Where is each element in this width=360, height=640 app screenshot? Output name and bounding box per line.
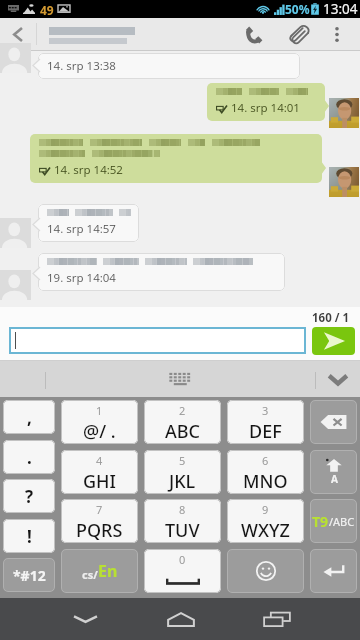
staticText: ABC — [165, 419, 200, 444]
button[interactable]: 4 — [61, 450, 138, 494]
staticText: cs/ — [82, 567, 98, 582]
staticText: 1 — [96, 403, 103, 418]
button[interactable]: 14. srp 14:01 — [207, 83, 325, 121]
button[interactable]: Question mark — [3, 479, 55, 513]
button[interactable]: Enter — [310, 549, 357, 593]
staticText: 14. srp 14:57 — [47, 221, 116, 237]
button[interactable]: 6 — [227, 450, 304, 494]
staticText: WXYZ — [241, 518, 290, 543]
button[interactable]: 14. srp 14:52 — [30, 134, 322, 183]
button[interactable]: Hide keyboard — [316, 361, 360, 397]
staticText: , — [27, 406, 32, 429]
button[interactable]: Emoji — [227, 549, 304, 593]
staticText: 8 — [179, 502, 186, 517]
button[interactable]: 7 — [61, 499, 138, 543]
button[interactable]: Back — [25, 598, 145, 640]
staticText: 7 — [96, 502, 103, 517]
button[interactable]: Call — [238, 18, 270, 51]
staticText: 5 — [179, 453, 186, 468]
button[interactable]: More options — [324, 18, 350, 51]
button[interactable] — [9, 327, 306, 354]
button[interactable]: Backspace — [310, 400, 357, 444]
staticText: 0 — [179, 552, 186, 567]
button[interactable]: Exclamation mark — [3, 519, 55, 553]
button[interactable]: 1 — [61, 400, 138, 444]
staticText: PQRS — [76, 518, 123, 543]
staticText: 14. srp 14:01 — [231, 100, 300, 116]
button[interactable]: Send — [312, 327, 355, 355]
button[interactable]: 3 — [227, 400, 304, 444]
staticText: 50% — [285, 1, 310, 17]
button[interactable]: Attach — [282, 18, 314, 51]
staticText: MNO — [243, 469, 288, 494]
staticText: T9 — [312, 512, 329, 531]
staticText: GHI — [83, 469, 116, 494]
button[interactable]: 14. srp 13:38 — [38, 53, 300, 79]
staticText: @/ . — [83, 419, 116, 444]
staticText: 14. srp 14:52 — [54, 162, 123, 178]
staticText: 14. srp 13:38 — [47, 58, 116, 74]
staticText: 9 — [262, 502, 269, 517]
button[interactable]: 5 — [144, 450, 221, 494]
staticText: ! — [27, 525, 32, 548]
staticText: 49 — [40, 2, 54, 18]
button[interactable]: Suggestions — [46, 361, 315, 397]
button[interactable]: 9 — [227, 499, 304, 543]
button[interactable]: 0 — [144, 549, 221, 593]
staticText: En — [98, 560, 118, 582]
staticText: 4 — [96, 453, 103, 468]
button[interactable]: 14. srp 14:57 — [38, 204, 139, 242]
button[interactable]: Change language — [61, 549, 138, 593]
staticText: /ABC — [329, 514, 355, 529]
button[interactable]: Shift — [310, 450, 357, 494]
button[interactable]: Comma — [3, 400, 55, 434]
staticText: ? — [25, 485, 34, 508]
button[interactable]: 19. srp 14:04 — [38, 253, 285, 291]
button[interactable]: Symbols — [3, 558, 55, 592]
button[interactable]: Home — [145, 598, 217, 640]
button[interactable]: 8 — [144, 499, 221, 543]
button[interactable]: Recent apps — [217, 598, 337, 640]
staticText: . — [27, 446, 32, 469]
staticText: A — [331, 472, 338, 486]
staticText: 6 — [262, 453, 269, 468]
button[interactable]: Navigate up — [0, 18, 36, 51]
staticText: 160 / 1 — [312, 310, 350, 326]
button[interactable]: Switch input mode — [310, 499, 357, 543]
staticText: 3 — [262, 403, 269, 418]
staticText: TUV — [165, 518, 200, 543]
staticText: DEF — [249, 419, 282, 444]
button[interactable]: 2 — [144, 400, 221, 444]
button[interactable]: Period — [3, 440, 55, 474]
staticText: *#12 — [13, 566, 46, 585]
staticText: 19. srp 14:04 — [47, 270, 116, 286]
staticText: JKL — [169, 469, 196, 494]
staticText: 2 — [179, 403, 186, 418]
staticText: 13:04 — [323, 0, 358, 18]
